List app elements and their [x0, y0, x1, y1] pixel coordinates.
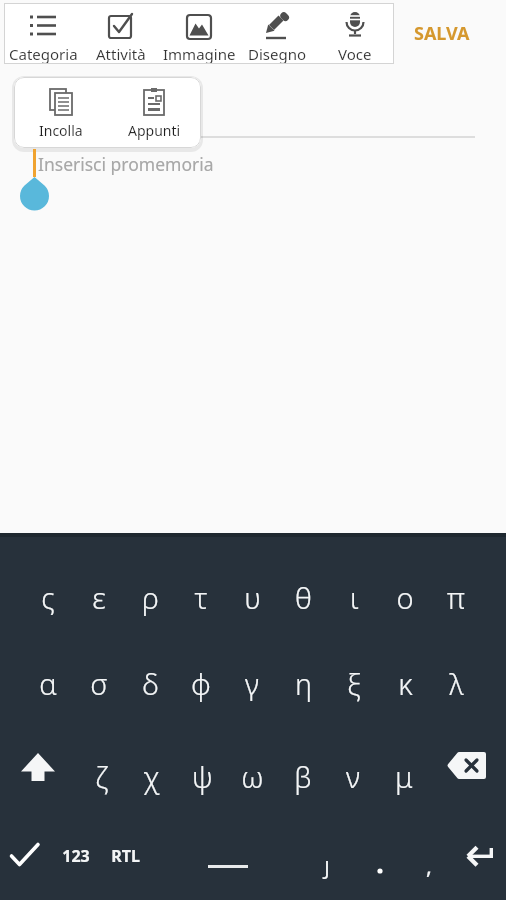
staticText: λ [449, 664, 464, 703]
button[interactable]: ζ [75, 754, 127, 798]
button[interactable]: Immagine [160, 3, 238, 64]
staticText: Incolla [39, 121, 83, 140]
staticText: δ [142, 664, 159, 703]
button[interactable]: υ [226, 575, 278, 619]
button[interactable] [14, 743, 62, 791]
button[interactable]: π [430, 575, 482, 619]
staticText: RTL [111, 845, 140, 867]
button[interactable]: ψ [176, 754, 228, 798]
button[interactable]: τ [175, 575, 227, 619]
button[interactable]: δ [124, 661, 176, 705]
button[interactable]: γ [226, 661, 278, 705]
staticText: τ [194, 578, 208, 617]
staticText: ψ [192, 757, 213, 796]
staticText: ς [41, 578, 55, 617]
staticText: α [39, 664, 57, 703]
button[interactable]: Incolla [14, 77, 107, 148]
staticText: Voce [338, 44, 372, 64]
button[interactable]: 123 [53, 836, 99, 876]
button[interactable]: ν [327, 754, 379, 798]
button[interactable]: η [277, 661, 329, 705]
staticText: μ [395, 757, 413, 796]
button[interactable]: SALVA [408, 20, 476, 46]
button[interactable]: μ [378, 754, 430, 798]
button[interactable]: Appunti [107, 77, 201, 148]
button[interactable]: σ [73, 661, 125, 705]
button[interactable]: J [307, 847, 347, 887]
button[interactable] [444, 743, 492, 787]
staticText: , [426, 850, 432, 880]
staticText: σ [90, 664, 108, 703]
button[interactable]: Disegno [238, 3, 316, 64]
button[interactable]: ρ [124, 575, 176, 619]
button[interactable]: θ [277, 575, 329, 619]
staticText: γ [245, 664, 259, 703]
button[interactable]: χ [125, 754, 177, 798]
button[interactable]: ς [22, 575, 74, 619]
button[interactable] [458, 834, 502, 876]
button[interactable]: Voce [316, 3, 394, 64]
staticText: SALVA [414, 21, 470, 46]
button[interactable]: α [22, 661, 74, 705]
button[interactable]: ο [379, 575, 431, 619]
button[interactable] [3, 835, 47, 875]
button[interactable]: RTL [102, 836, 148, 876]
staticText: Attività [96, 44, 146, 64]
button[interactable]: Attività [82, 3, 160, 64]
staticText: φ [191, 664, 211, 703]
staticText: ξ [347, 664, 361, 703]
button[interactable]: β [277, 754, 329, 798]
button[interactable] [150, 846, 306, 886]
button[interactable]: Categoria [4, 3, 82, 64]
button[interactable]: ξ [328, 661, 380, 705]
button[interactable]: λ [430, 661, 482, 705]
staticText: 123 [62, 845, 90, 867]
staticText: J [324, 854, 330, 881]
staticText: β [294, 757, 312, 796]
button[interactable]: ω [226, 754, 278, 798]
staticText: χ [143, 757, 160, 796]
staticText: Immagine [163, 44, 236, 64]
staticText: Categoria [9, 44, 78, 64]
button[interactable]: ι [328, 575, 380, 619]
staticText: ρ [142, 578, 159, 617]
staticText: Inserisci promemoria [38, 152, 214, 176]
staticText: ε [92, 578, 106, 617]
button[interactable]: , [409, 845, 449, 885]
button[interactable]: ε [73, 575, 125, 619]
button[interactable]: φ [175, 661, 227, 705]
staticText: Disegno [248, 44, 307, 64]
staticText: ω [241, 757, 264, 796]
staticText: ι [350, 578, 359, 617]
staticText: κ [398, 664, 413, 703]
staticText: ζ [95, 757, 108, 796]
staticText: Appunti [128, 121, 181, 140]
button[interactable]: κ [379, 661, 431, 705]
button[interactable] [360, 851, 400, 891]
staticText: π [447, 578, 465, 617]
staticText: υ [244, 578, 261, 617]
staticText: ν [346, 757, 360, 796]
staticText: θ [295, 578, 312, 617]
staticText: η [295, 664, 312, 703]
staticText: ο [396, 578, 414, 617]
